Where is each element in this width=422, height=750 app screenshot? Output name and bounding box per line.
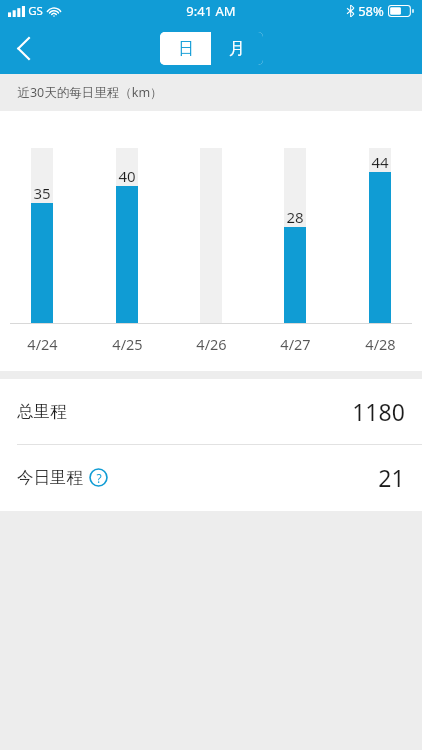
button[interactable]: 44 [369, 148, 391, 324]
button[interactable]: 40 [116, 148, 138, 324]
staticText: 4/25 [112, 334, 143, 354]
staticText: 58% [358, 2, 384, 20]
staticText: 9:41 AM [186, 2, 236, 20]
staticText: 总里程 [17, 401, 67, 422]
button[interactable]: Back [0, 25, 46, 71]
staticText: 近30天的每日里程（km） [17, 84, 163, 101]
button[interactable]: 今日里程 [0, 445, 422, 510]
staticText: 1180 [352, 396, 405, 427]
staticText: 35 [33, 183, 51, 203]
staticText: 44 [371, 152, 389, 172]
staticText: 40 [118, 166, 136, 186]
staticText: 21 [378, 462, 405, 493]
button[interactable]: 35 [31, 148, 53, 324]
button[interactable]: 28 [284, 148, 306, 324]
button[interactable]: Help [89, 468, 108, 487]
button[interactable]: 月 [211, 32, 263, 65]
button[interactable]: 总里程 [0, 379, 422, 444]
staticText: GS [28, 3, 43, 19]
staticText: 4/27 [280, 334, 311, 354]
staticText: 今日里程 [17, 467, 83, 488]
staticText: 4/26 [196, 334, 227, 354]
button[interactable]: 日 [160, 32, 211, 65]
staticText: 日 [178, 39, 194, 59]
staticText: ? [96, 470, 102, 486]
staticText: 4/28 [365, 334, 396, 354]
staticText: 4/24 [27, 334, 58, 354]
staticText: 月 [229, 39, 245, 59]
staticText: 28 [286, 207, 304, 227]
